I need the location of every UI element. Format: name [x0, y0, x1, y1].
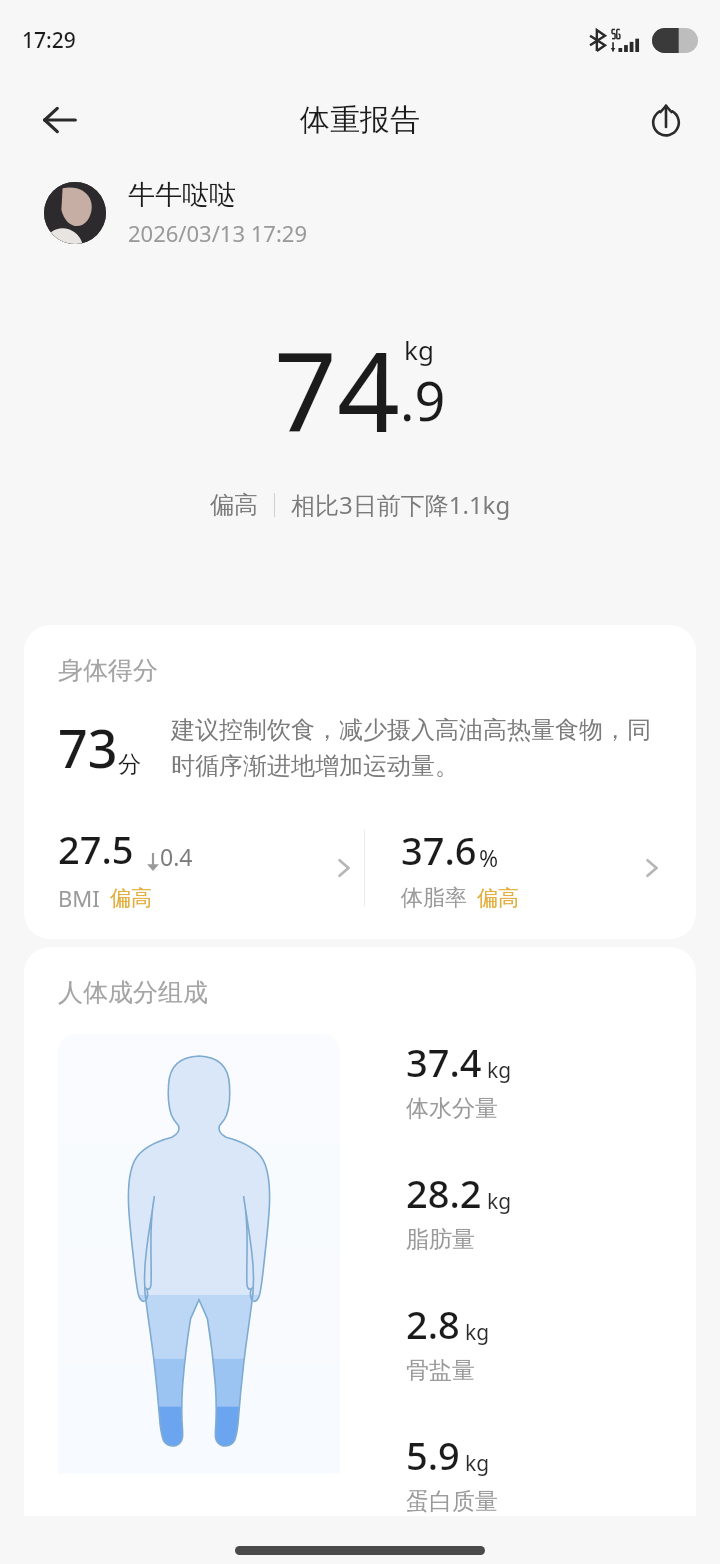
button[interactable]: 27.5	[58, 823, 364, 913]
staticText: 脂肪量	[406, 1225, 475, 1254]
staticText: 17:29	[22, 26, 76, 55]
staticText: 体水分量	[406, 1094, 498, 1123]
staticText: 27.5	[58, 823, 134, 875]
staticText: BMI	[58, 883, 100, 913]
staticText: 74	[274, 314, 400, 464]
staticText: 体脂率	[401, 884, 467, 912]
staticText: 0.4	[160, 841, 193, 872]
staticText: 蛋白质量	[406, 1487, 498, 1516]
staticText: 2026/03/13 17:29	[128, 218, 307, 248]
staticText: 牛牛哒哒	[128, 178, 236, 212]
staticText: 偏高	[110, 885, 152, 911]
staticText: kg	[465, 1449, 490, 1478]
staticText: 人体成分组成	[58, 977, 208, 1008]
staticText: 2.8	[406, 1298, 460, 1350]
button[interactable]: Back	[30, 90, 90, 150]
staticText: 73	[58, 712, 118, 783]
staticText: kg	[465, 1318, 490, 1347]
button[interactable]: 37.6	[401, 824, 672, 912]
staticText: 建议控制饮食，减少摄入高油高热量食物，同时循序渐进地增加运动量。	[171, 715, 672, 781]
staticText: kg	[487, 1187, 512, 1216]
button[interactable]: 牛牛哒哒	[44, 178, 720, 248]
staticText: 相比3日前下降1.1kg	[291, 488, 511, 521]
staticText: 身体得分	[58, 655, 158, 686]
staticText: 体重报告	[300, 101, 420, 139]
staticText: kg	[404, 332, 434, 367]
staticText: .9	[400, 363, 446, 437]
staticText: 37.4	[406, 1036, 482, 1088]
button[interactable]: Share	[638, 92, 694, 148]
staticText: %	[479, 842, 499, 873]
staticText: 5.9	[406, 1429, 460, 1481]
staticText: 骨盐量	[406, 1356, 475, 1385]
staticText: kg	[487, 1056, 512, 1085]
staticText: 分	[118, 750, 141, 779]
staticText: 28.2	[406, 1167, 482, 1219]
staticText: 偏高	[210, 490, 258, 520]
staticText: 偏高	[477, 885, 519, 911]
staticText: 37.6	[401, 824, 477, 876]
